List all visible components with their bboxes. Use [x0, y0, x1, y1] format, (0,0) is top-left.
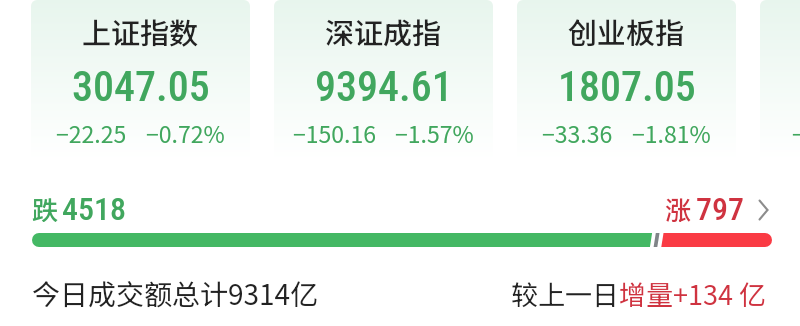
- staticText: −1.81%: [632, 116, 711, 149]
- staticText: −22.25: [56, 116, 127, 149]
- staticText: 今日成交额总计9314亿: [32, 273, 319, 314]
- staticText: 上证指数: [82, 10, 199, 52]
- staticText: −150.16: [293, 116, 376, 149]
- button[interactable]: 涨跌家数详情: [665, 190, 769, 222]
- staticText: 1807.05: [558, 62, 696, 111]
- staticText: 797: [696, 190, 744, 222]
- staticText: −33.36: [542, 116, 613, 149]
- button[interactable]: 沪深300: [760, 0, 800, 160]
- staticText: 较上一日增量+134 亿: [511, 274, 766, 313]
- button[interactable]: 深证成指: [274, 0, 493, 160]
- button[interactable]: 创业板指: [517, 0, 736, 160]
- staticText: 9394.61: [315, 62, 453, 111]
- staticText: −6.87: [792, 116, 800, 149]
- staticText: 4518: [62, 190, 126, 222]
- staticText: 创业板指: [568, 10, 685, 52]
- staticText: 跌: [32, 190, 59, 222]
- staticText: 涨: [665, 190, 692, 222]
- staticText: 深证成指: [325, 10, 442, 52]
- staticText: −0.72%: [146, 116, 225, 149]
- staticText: 3047.05: [72, 62, 210, 111]
- button[interactable]: 上证指数: [31, 0, 250, 160]
- staticText: −1.57%: [395, 116, 474, 149]
